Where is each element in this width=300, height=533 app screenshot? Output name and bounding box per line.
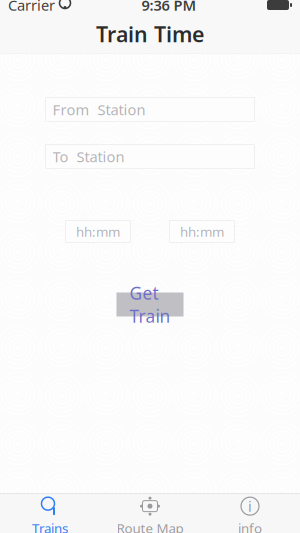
staticText: Route Map [116, 519, 183, 533]
staticText: Trains [32, 519, 68, 533]
button[interactable]: i [200, 494, 300, 533]
staticText: To Station [52, 147, 124, 166]
staticText: info [238, 519, 262, 533]
button[interactable]: Route Map [100, 494, 200, 533]
button[interactable]: Trains [0, 494, 100, 533]
staticText: 9:36 PM [141, 0, 196, 15]
staticText: i [248, 496, 252, 516]
staticText [55, 0, 59, 15]
staticText: Carrier [8, 0, 55, 15]
staticText: Train Time [96, 20, 204, 48]
button[interactable]: Get Train [116, 292, 183, 316]
staticText: Get Train [129, 281, 170, 327]
staticText: From Station [52, 100, 145, 119]
staticText: hh:mm [180, 223, 224, 240]
staticText: hh:mm [76, 223, 120, 240]
